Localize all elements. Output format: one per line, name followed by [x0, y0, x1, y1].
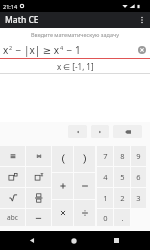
- button[interactable]: key: [52, 200, 73, 226]
- staticText: 4: [103, 172, 108, 182]
- button[interactable]: key: [0, 146, 25, 166]
- button[interactable]: key: [0, 188, 25, 208]
- button[interactable]: More options: [134, 12, 150, 28]
- button[interactable]: abc: [0, 209, 25, 226]
- button[interactable]: 2: [114, 188, 130, 208]
- button[interactable]: Recent apps: [95, 231, 137, 250]
- staticText: Введите математическую задачу: [31, 31, 120, 38]
- button[interactable]: 8: [114, 146, 130, 166]
- button[interactable]: 6: [131, 167, 146, 187]
- staticText: 2: [9, 44, 13, 51]
- staticText: x ∈ [-1, 1]: [57, 61, 94, 72]
- staticText: Math CE: [5, 14, 39, 26]
- button[interactable]: key: [26, 146, 51, 166]
- button[interactable]: Home: [53, 231, 95, 250]
- staticText: 9: [136, 151, 141, 161]
- staticText: − 1: [64, 43, 81, 57]
- staticText: 21:14: [3, 3, 18, 10]
- button[interactable]: key: [74, 200, 95, 226]
- button[interactable]: 1: [97, 188, 113, 208]
- button[interactable]: 5: [114, 167, 130, 187]
- staticText: 6: [136, 172, 141, 182]
- button[interactable]: key: [0, 167, 25, 187]
- staticText: 7: [103, 151, 108, 161]
- button[interactable]: 4: [97, 167, 113, 187]
- button[interactable]: key: [52, 146, 73, 172]
- staticText: 8: [120, 151, 125, 161]
- button[interactable]: Back: [11, 231, 53, 250]
- staticText: 3: [136, 193, 141, 203]
- button[interactable]: Space: [26, 209, 51, 226]
- button[interactable]: 3: [131, 188, 146, 208]
- button[interactable]: key: [74, 173, 95, 199]
- button[interactable]: Backspace: [113, 125, 142, 138]
- button[interactable]: Move right: [91, 125, 109, 138]
- button[interactable]: Move left: [68, 125, 87, 138]
- button[interactable]: 7: [97, 146, 113, 166]
- staticText: x: [3, 43, 9, 57]
- button[interactable]: .: [114, 209, 130, 226]
- button[interactable]: Clear: [138, 46, 146, 54]
- button[interactable]: key: [26, 167, 51, 187]
- staticText: abc: [7, 213, 18, 222]
- staticText: 2: [120, 193, 125, 203]
- staticText: 4: [60, 44, 64, 51]
- button[interactable]: 9: [131, 146, 146, 166]
- button[interactable]: 0: [97, 209, 113, 226]
- staticText: .: [121, 213, 124, 223]
- button[interactable]: key: [26, 188, 51, 208]
- button[interactable]: key: [74, 146, 95, 172]
- staticText: 1: [103, 193, 108, 203]
- staticText: 5: [120, 172, 125, 182]
- button[interactable]: key: [52, 173, 73, 199]
- staticText: − |x| ≥ x: [13, 43, 60, 57]
- staticText: 0: [103, 213, 108, 223]
